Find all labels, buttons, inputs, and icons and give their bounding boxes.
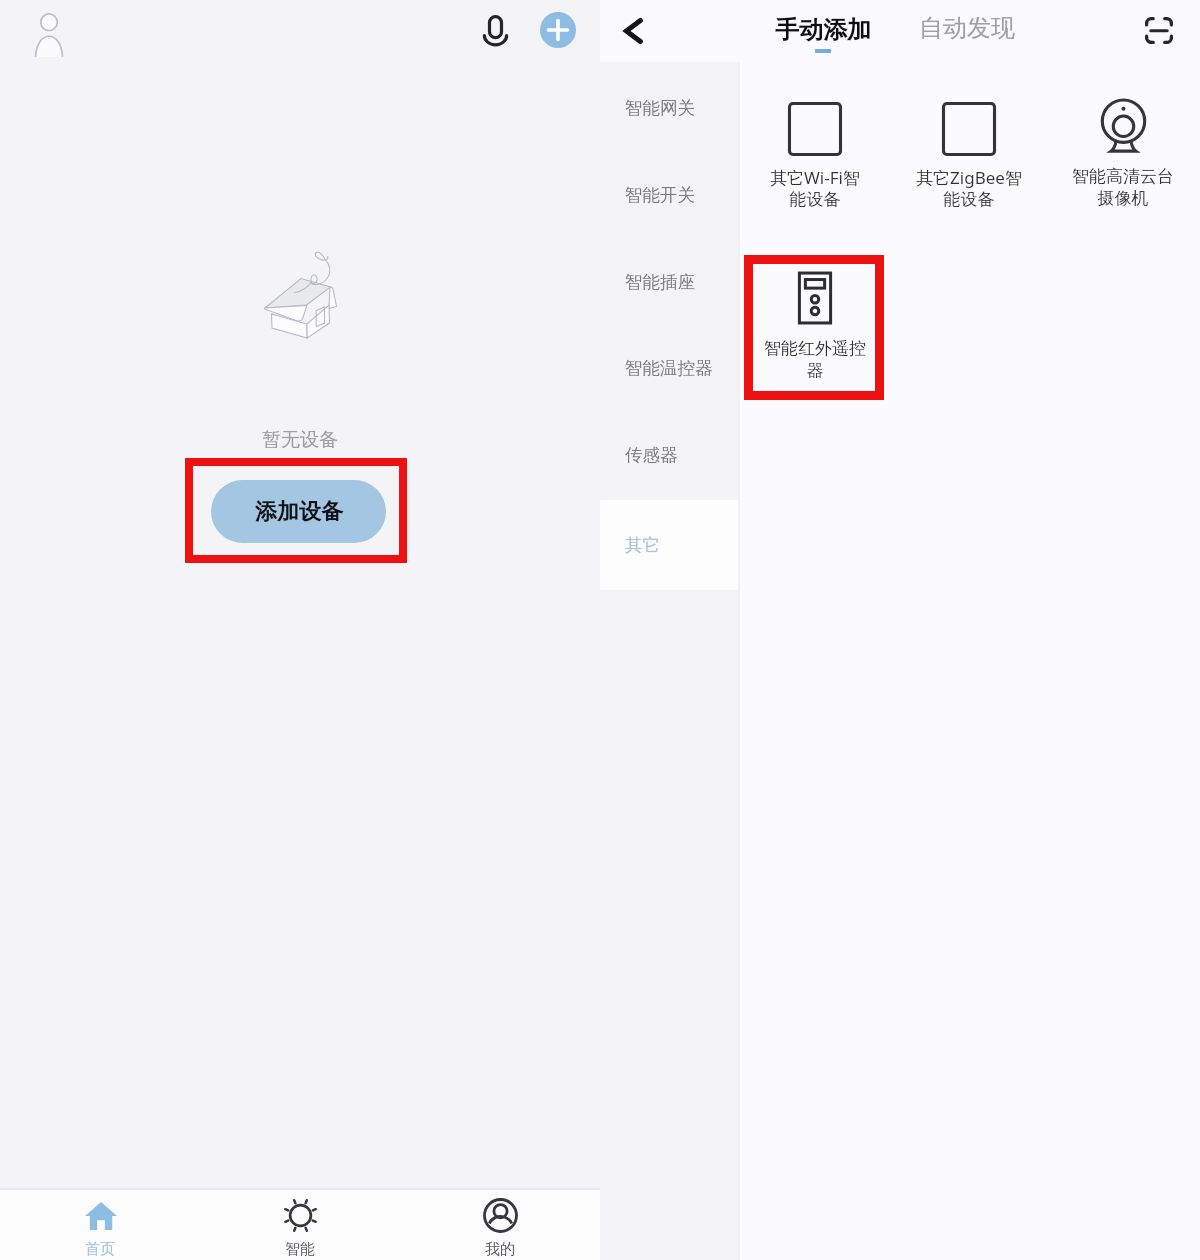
staticText: 智能 (285, 1240, 315, 1259)
button[interactable]: Voice input (470, 5, 520, 55)
staticText: 智能插座 (625, 271, 695, 293)
staticText: 暂无设备 (262, 428, 338, 452)
button[interactable]: 自动发现 (919, 13, 1015, 43)
button[interactable]: 手动添加 (775, 15, 871, 53)
button[interactable]: 智能开关 (600, 165, 738, 225)
staticText: 智能开关 (625, 184, 695, 206)
staticText: 传感器 (625, 444, 678, 466)
button[interactable]: Back (608, 5, 660, 57)
button[interactable]: 智能插座 (600, 252, 738, 312)
button[interactable]: Add device (540, 12, 576, 48)
button[interactable]: 智能 (200, 1190, 400, 1260)
staticText: 其它 (625, 534, 660, 556)
staticText: 其它ZigBee智 能设备 (916, 166, 1022, 210)
staticText: 我的 (485, 1240, 515, 1259)
staticText: 其它Wi-Fi智 能设备 (770, 166, 860, 210)
staticText: 智能高清云台 摄像机 (1072, 166, 1174, 209)
button[interactable]: 智能网关 (600, 78, 738, 138)
button[interactable]: Profile (24, 3, 74, 53)
staticText: 首页 (85, 1240, 115, 1259)
button[interactable]: 智能红外遥控 器 (738, 272, 892, 384)
button[interactable]: 我的 (400, 1190, 600, 1260)
staticText: 手动添加 (775, 15, 871, 45)
staticText: 添加设备 (255, 498, 343, 526)
button[interactable]: 其它Wi-Fi智 能设备 (738, 100, 892, 212)
button[interactable]: 传感器 (600, 425, 738, 485)
button[interactable]: 首页 (0, 1190, 200, 1260)
staticText: 自动发现 (919, 13, 1015, 43)
button[interactable]: 智能温控器 (600, 338, 738, 398)
staticText: 智能网关 (625, 97, 695, 119)
button[interactable]: Scan QR code (1135, 6, 1183, 54)
staticText: 智能温控器 (625, 357, 713, 379)
staticText: 智能红外遥控 器 (764, 338, 866, 381)
button[interactable]: 智能高清云台 摄像机 (1046, 100, 1200, 212)
button[interactable]: 其它ZigBee智 能设备 (892, 100, 1046, 212)
button[interactable]: 其它 (600, 500, 738, 590)
button[interactable]: 添加设备 (211, 480, 386, 543)
